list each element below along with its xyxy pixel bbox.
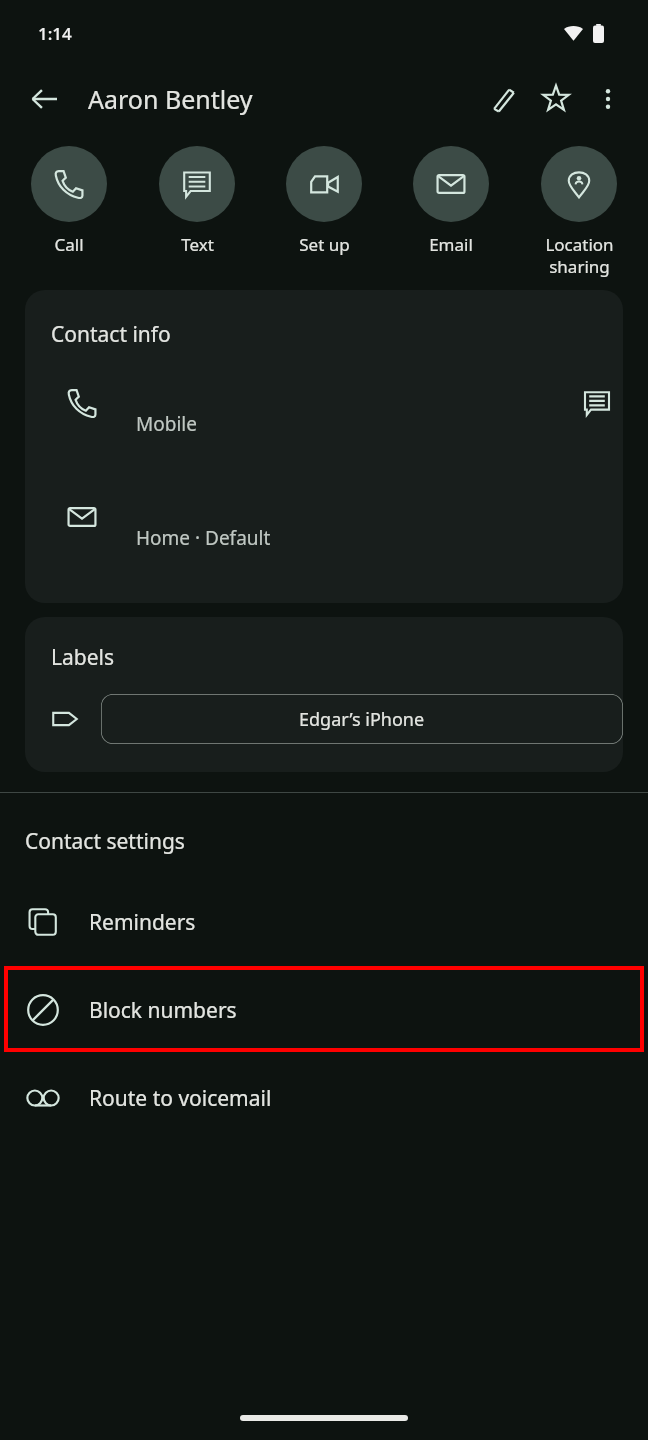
button[interactable]: Route to voicemail bbox=[0, 1054, 648, 1142]
staticText: Labels bbox=[51, 643, 115, 672]
staticText: Email bbox=[429, 233, 473, 256]
staticText: Edgar’s iPhone bbox=[299, 707, 425, 732]
button[interactable]: Email bbox=[393, 144, 509, 256]
staticText: Block numbers bbox=[89, 996, 237, 1025]
staticText: Mobile bbox=[136, 411, 197, 437]
button[interactable]: Reminders bbox=[0, 878, 648, 966]
button[interactable]: Add to favorites bbox=[530, 73, 582, 125]
button[interactable]: Send message bbox=[571, 377, 623, 429]
staticText: Location sharing bbox=[545, 233, 614, 278]
staticText: Contact info bbox=[51, 320, 171, 349]
staticText: 1:14 bbox=[38, 22, 72, 45]
button[interactable]: More options bbox=[582, 73, 634, 125]
button[interactable]: Set up bbox=[266, 144, 382, 256]
button[interactable]: Call bbox=[11, 144, 127, 256]
button[interactable]: Location sharing bbox=[521, 144, 637, 278]
button[interactable]: Back bbox=[20, 75, 68, 123]
button[interactable]: Home · Default bbox=[25, 493, 623, 593]
staticText: Call bbox=[54, 233, 84, 256]
staticText: Reminders bbox=[89, 908, 196, 937]
button[interactable]: Mobile bbox=[25, 375, 623, 493]
button[interactable]: Edit contact bbox=[478, 73, 530, 125]
staticText: Text bbox=[181, 233, 214, 256]
button[interactable]: Block numbers bbox=[0, 966, 648, 1054]
button[interactable]: Text bbox=[139, 144, 255, 256]
button[interactable]: Edgar’s iPhone bbox=[101, 694, 623, 744]
staticText: Contact settings bbox=[25, 827, 185, 856]
staticText: Aaron Bentley bbox=[88, 82, 253, 116]
staticText: Route to voicemail bbox=[89, 1084, 272, 1113]
staticText: Set up bbox=[299, 233, 350, 256]
staticText: Home · Default bbox=[136, 525, 271, 551]
